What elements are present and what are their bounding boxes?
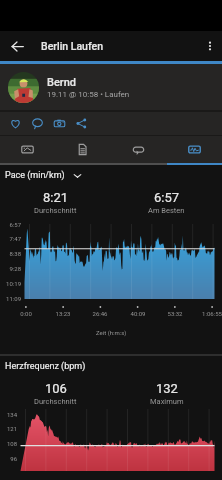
staticText: Durchschnitt: [34, 397, 77, 406]
staticText: 8:21: [43, 190, 69, 205]
button[interactable]: Bernd: [0, 64, 222, 110]
staticText: 134: [0, 411, 17, 418]
button[interactable]: Pace (min/km): [5, 170, 82, 181]
staticText: 0:00: [10, 310, 42, 317]
staticText: 11:09: [0, 295, 21, 302]
staticText: 26:46: [84, 310, 116, 317]
staticText: 96: [0, 455, 17, 462]
staticText: 6:57: [154, 190, 180, 205]
button[interactable]: Details: [55, 136, 110, 163]
staticText: 53:32: [159, 310, 191, 317]
button[interactable]: Laps: [110, 136, 166, 163]
button[interactable]: Comment: [26, 112, 48, 135]
staticText: 132: [156, 381, 178, 396]
button[interactable]: Photos: [48, 112, 70, 135]
staticText: 19.11 @ 10:58 • Laufen: [47, 90, 130, 99]
staticText: Bernd: [47, 76, 77, 89]
staticText: 9:28: [0, 265, 21, 272]
staticText: Berlin Laufen: [41, 40, 103, 52]
staticText: 6:57: [0, 221, 21, 228]
button[interactable]: Charts: [166, 136, 222, 163]
staticText: 7:47: [0, 235, 21, 242]
staticText: 8:38: [0, 250, 21, 257]
staticText: 13:23: [47, 310, 79, 317]
staticText: Pace (min/km): [5, 170, 65, 181]
staticText: Zeit (h:m:s): [96, 329, 127, 336]
staticText: 121: [0, 425, 17, 432]
button[interactable]: Share: [70, 112, 92, 135]
staticText: Am Besten: [148, 206, 185, 215]
button[interactable]: Map: [0, 136, 55, 163]
staticText: 10:19: [0, 280, 21, 287]
button[interactable]: Back: [0, 31, 34, 61]
staticText: 108: [0, 440, 17, 447]
staticText: Durchschnitt: [34, 206, 77, 215]
staticText: Maximum: [150, 397, 184, 406]
staticText: 106: [45, 381, 67, 396]
button[interactable]: Like: [4, 112, 26, 135]
staticText: 1:06:55: [196, 310, 222, 317]
button[interactable]: More options: [198, 31, 222, 61]
staticText: 40:09: [122, 310, 154, 317]
staticText: Herzfrequenz (bpm): [5, 361, 86, 372]
